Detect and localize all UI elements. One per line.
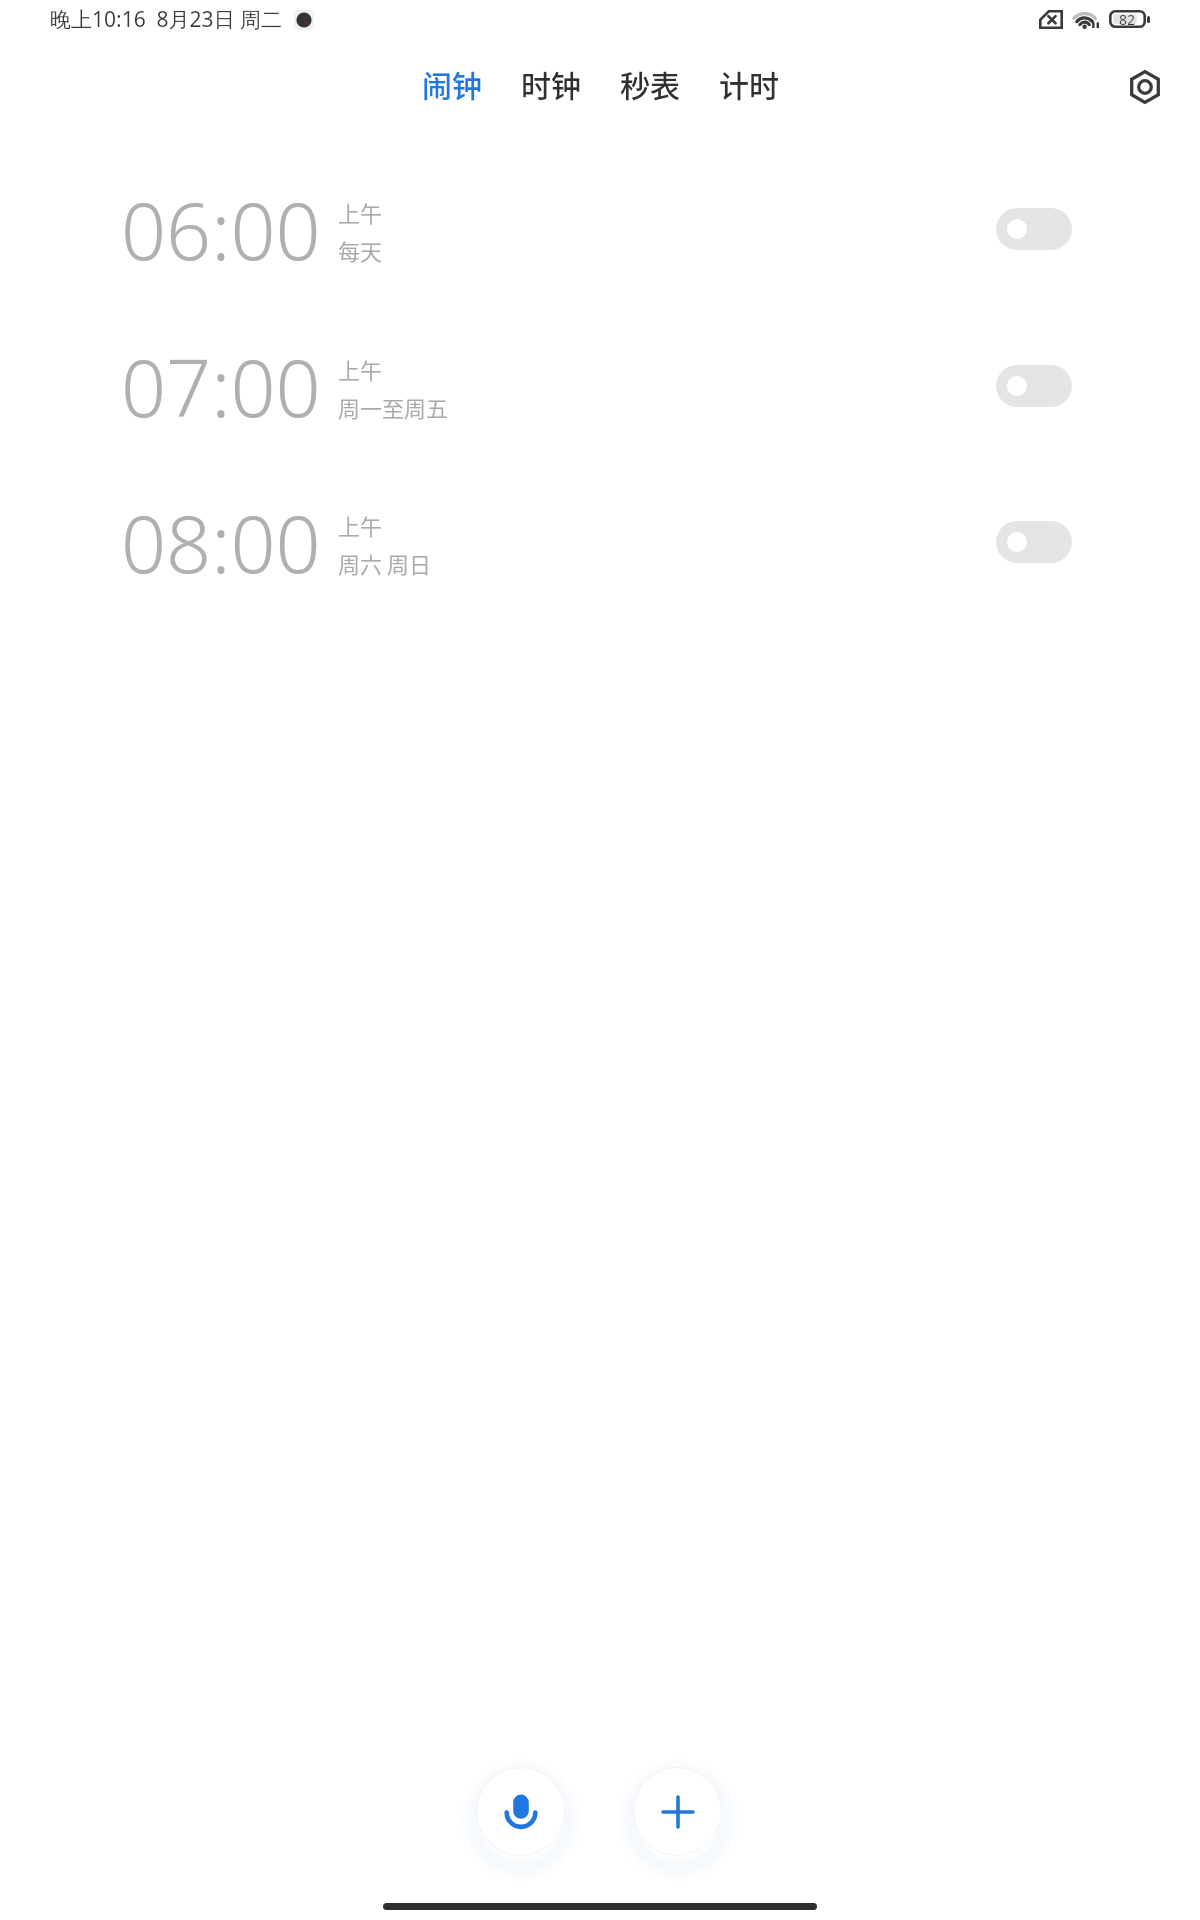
button[interactable]: 设置 [1110, 52, 1180, 122]
button[interactable]: 闹钟开关 [996, 521, 1072, 563]
staticText: 上午 [338, 353, 383, 385]
staticText: 上午 [338, 196, 383, 228]
button[interactable]: 时钟 [520, 56, 582, 111]
staticText: 闹钟 [422, 62, 482, 105]
staticText: 计时 [719, 62, 779, 105]
button[interactable]: 闹钟 [421, 56, 483, 111]
button[interactable]: 07:00 [0, 309, 1200, 465]
staticText: 07:00 [121, 333, 321, 441]
staticText: 晚上10:16 8月23日 周二 [50, 5, 283, 34]
button[interactable]: 添加闹钟 [633, 1767, 722, 1856]
button[interactable]: 闹钟开关 [996, 365, 1072, 407]
staticText: 上午 [338, 509, 383, 541]
staticText: 06:00 [121, 176, 321, 284]
staticText: 每天 [338, 234, 383, 266]
staticText: 82 [1119, 10, 1136, 28]
staticText: 周六 周日 [338, 547, 431, 579]
button[interactable]: 闹钟开关 [996, 208, 1072, 250]
button[interactable]: 秒表 [619, 56, 681, 111]
staticText: 秒表 [620, 62, 680, 105]
button[interactable]: 计时 [718, 56, 780, 111]
button[interactable]: 08:00 [0, 465, 1200, 621]
staticText: 时钟 [521, 62, 581, 105]
button[interactable]: 语音闹钟 [476, 1767, 565, 1856]
staticText: 08:00 [121, 489, 321, 597]
button[interactable]: 06:00 [0, 152, 1200, 308]
staticText: 周一至周五 [338, 391, 449, 423]
